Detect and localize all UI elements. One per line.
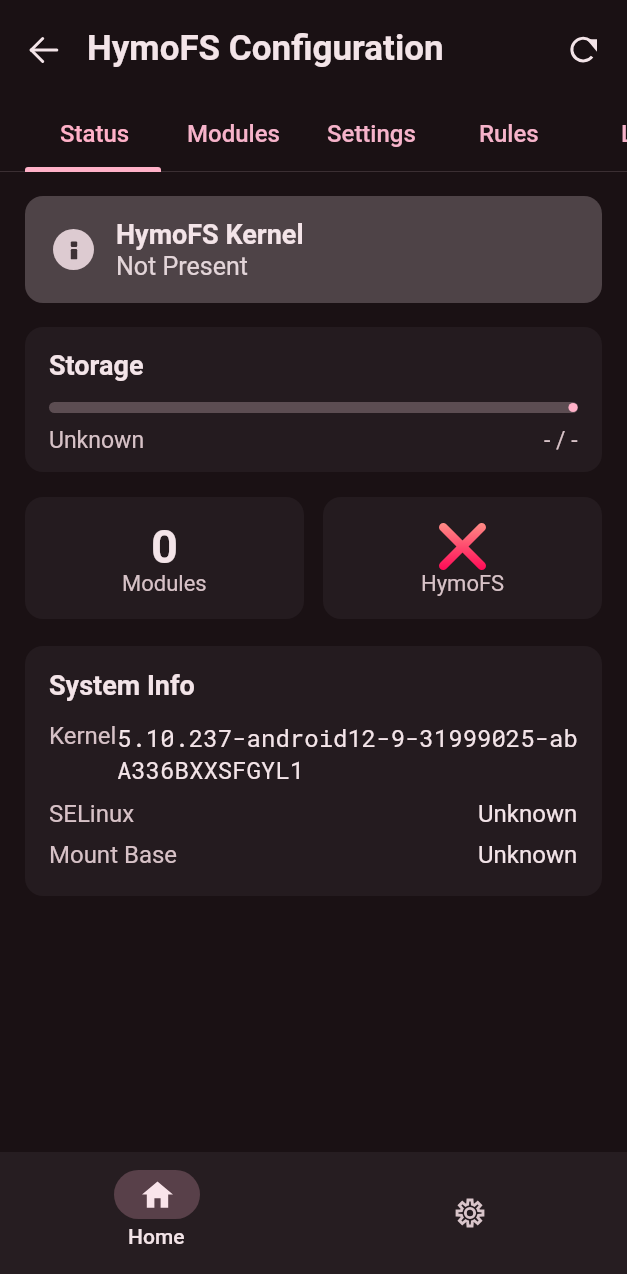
button[interactable]: HymoFS Kernel	[25, 196, 602, 303]
staticText: HymoFS Kernel	[116, 219, 304, 251]
button[interactable]: System Info	[25, 646, 602, 896]
staticText: Settings	[327, 120, 416, 148]
staticText: - / -	[544, 427, 578, 454]
staticText: Modules	[187, 120, 280, 148]
staticText: Rules	[479, 120, 539, 148]
staticText: Unknown	[49, 427, 145, 454]
staticText: HymoFS	[421, 571, 505, 597]
staticText: Unknown	[478, 841, 578, 869]
button[interactable]: HymoFS	[323, 497, 602, 619]
staticText: HymoFS Configuration	[87, 28, 444, 69]
staticText: Storage	[49, 350, 144, 382]
staticText: Not Present	[116, 252, 248, 281]
staticText: SELinux	[49, 800, 135, 828]
staticText: Kernel	[49, 722, 117, 750]
staticText: Logs	[621, 120, 627, 148]
staticText: Unknown	[478, 800, 578, 828]
staticText: Mount Base	[49, 841, 178, 869]
staticText: Status	[60, 120, 130, 148]
button[interactable]: Logs	[578, 97, 627, 172]
button[interactable]: Home	[0, 1152, 313, 1274]
staticText: 5.10.237-android12-9-31999025-ab A336BXX…	[117, 722, 578, 786]
button[interactable]: 0	[25, 497, 304, 619]
staticText: System Info	[49, 670, 195, 702]
staticText: 0	[151, 519, 178, 574]
button[interactable]: Settings	[313, 1152, 627, 1274]
staticText: Modules	[122, 571, 207, 597]
button[interactable]: Storage	[25, 327, 602, 472]
staticText: Home	[128, 1225, 185, 1250]
button[interactable]: Back	[18, 23, 70, 75]
button[interactable]: Status	[26, 97, 164, 172]
button[interactable]: Refresh	[559, 23, 611, 75]
button[interactable]: Modules	[164, 97, 302, 172]
button[interactable]: Settings	[302, 97, 440, 172]
button[interactable]: Rules	[440, 97, 578, 172]
